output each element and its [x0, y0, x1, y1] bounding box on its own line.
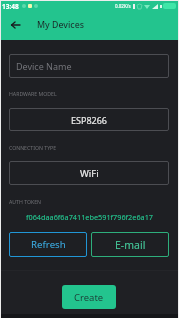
- staticText: f064daa6f6a7411ebe591f796f2e6a17: [0, 212, 179, 222]
- staticText: 0.02K/s: [115, 3, 131, 9]
- staticText: AUTH TOKEN: [9, 198, 42, 205]
- staticText: CONNECTION TYPE: [9, 144, 57, 151]
- staticText: Refresh: [31, 238, 66, 251]
- staticText: Device Name: [16, 60, 72, 72]
- button[interactable]: ESP8266: [9, 108, 169, 131]
- staticText: My Devices: [37, 19, 84, 31]
- staticText: ESP8266: [71, 114, 107, 126]
- button[interactable]: E-mail: [91, 232, 169, 257]
- button[interactable]: Back: [3, 13, 27, 37]
- staticText: E-mail: [115, 238, 146, 252]
- staticText: Create: [74, 291, 104, 304]
- button[interactable]: WiFi: [9, 161, 169, 185]
- button[interactable]: Device Name: [9, 54, 169, 78]
- staticText: 13:48: [2, 2, 19, 11]
- staticText: WiFi: [80, 167, 99, 180]
- staticText: HARDWARE MODEL: [9, 90, 57, 97]
- button[interactable]: Refresh: [9, 232, 87, 257]
- button[interactable]: Create: [62, 285, 116, 309]
